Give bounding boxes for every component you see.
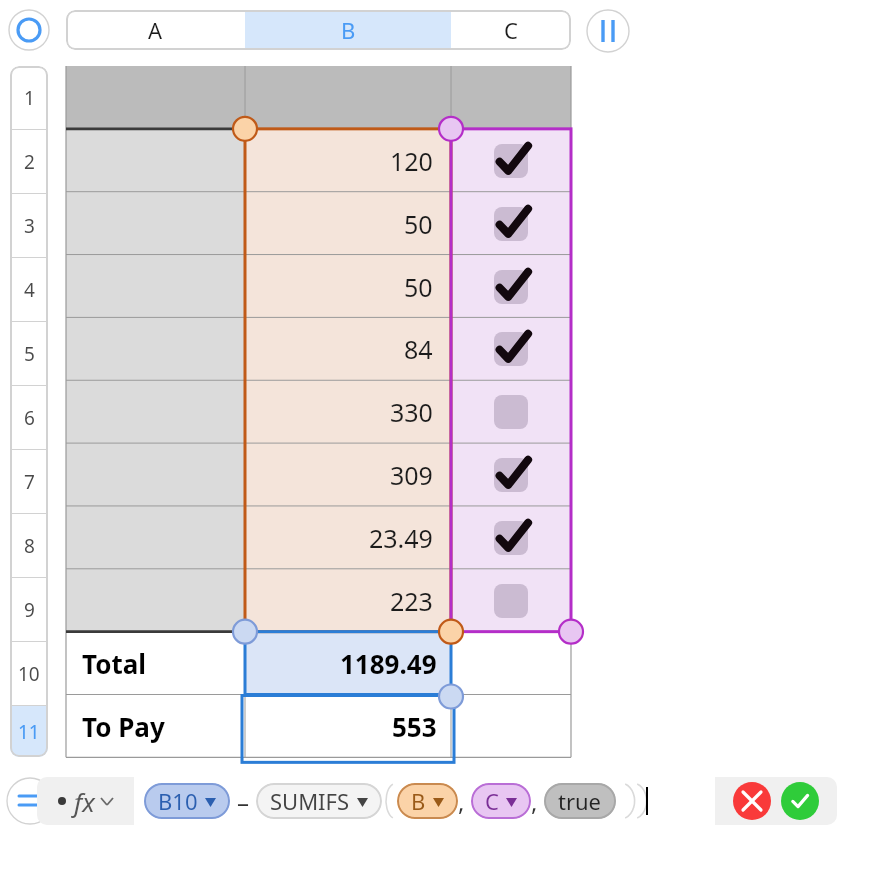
- staticText: 3: [24, 213, 35, 239]
- button[interactable]: C: [485, 783, 517, 819]
- button[interactable]: C: [451, 10, 571, 50]
- staticText: ,: [458, 785, 465, 818]
- staticText: To Pay: [82, 709, 165, 744]
- button[interactable]: 223: [245, 569, 451, 632]
- staticText: 23.49: [369, 521, 433, 555]
- staticText: A: [148, 15, 163, 45]
- staticText: B10: [158, 786, 198, 816]
- button[interactable]: 84: [245, 317, 451, 380]
- button[interactable]: 6: [10, 386, 48, 449]
- staticText: C: [504, 15, 518, 45]
- button[interactable]: Select all: [8, 9, 50, 51]
- button[interactable]: 4: [10, 258, 48, 321]
- button[interactable]: 5: [10, 322, 48, 385]
- button[interactable]: To Pay: [66, 695, 245, 758]
- button[interactable]: 3: [10, 194, 48, 257]
- staticText: fx: [74, 784, 95, 819]
- button[interactable]: Checked: [451, 443, 571, 506]
- staticText: 5: [24, 341, 35, 367]
- button[interactable]: 330: [245, 380, 451, 443]
- staticText: 1: [24, 85, 35, 111]
- button[interactable]: Unchecked: [451, 569, 571, 632]
- button[interactable]: Cancel: [733, 782, 771, 820]
- staticText: 330: [390, 395, 433, 429]
- staticText: 50: [404, 207, 433, 241]
- staticText: 50: [404, 270, 433, 304]
- button[interactable]: 553: [245, 695, 451, 758]
- staticText: 9: [24, 597, 35, 623]
- button[interactable]: Checked: [451, 255, 571, 318]
- button[interactable]: B: [245, 10, 451, 50]
- staticText: 4: [24, 277, 35, 303]
- button[interactable]: 8: [10, 514, 48, 577]
- staticText: C: [485, 786, 499, 816]
- staticText: 1189.49: [340, 646, 437, 681]
- button[interactable]: 1: [10, 66, 48, 129]
- button[interactable]: true: [558, 783, 602, 819]
- staticText: 7: [24, 469, 35, 495]
- button[interactable]: Checked: [451, 506, 571, 569]
- button[interactable]: SUMIFS: [270, 783, 368, 819]
- button[interactable]: 7: [10, 450, 48, 513]
- staticText: 309: [390, 458, 433, 492]
- button[interactable]: Total: [66, 632, 245, 695]
- button[interactable]: 10: [10, 642, 48, 705]
- button[interactable]: Checked: [451, 129, 571, 192]
- button[interactable]: 50: [245, 255, 451, 318]
- staticText: 6: [24, 405, 35, 431]
- button[interactable]: Unchecked: [451, 380, 571, 443]
- button[interactable]: fx: [37, 777, 134, 825]
- staticText: 553: [392, 709, 437, 744]
- staticText: 2: [24, 149, 35, 175]
- staticText: B: [341, 15, 356, 45]
- staticText: 223: [390, 584, 433, 618]
- button[interactable]: A: [66, 10, 245, 50]
- button[interactable]: Pause: [586, 9, 630, 53]
- staticText: 8: [24, 533, 35, 559]
- button[interactable]: 2: [10, 130, 48, 193]
- button[interactable]: 9: [10, 578, 48, 641]
- button[interactable]: 309: [245, 443, 451, 506]
- button[interactable]: B10: [158, 783, 216, 819]
- staticText: SUMIFS: [270, 786, 350, 816]
- button[interactable]: Confirm: [781, 782, 819, 820]
- staticText: 10: [18, 661, 40, 687]
- staticText: ,: [531, 785, 538, 818]
- staticText: Total: [82, 646, 147, 681]
- staticText: true: [558, 786, 602, 816]
- button[interactable]: B: [411, 783, 444, 819]
- button[interactable]: Checked: [451, 317, 571, 380]
- button[interactable]: 11: [10, 706, 48, 757]
- staticText: 11: [18, 719, 40, 745]
- staticText: 84: [404, 332, 433, 366]
- button[interactable]: Checked: [451, 192, 571, 255]
- staticText: B: [411, 786, 426, 816]
- button[interactable]: 1189.49: [245, 632, 451, 695]
- staticText: –: [237, 785, 249, 818]
- staticText: 120: [390, 144, 433, 178]
- button[interactable]: B10: [144, 777, 705, 825]
- button[interactable]: 50: [245, 192, 451, 255]
- button[interactable]: Menu: [6, 777, 54, 825]
- button[interactable]: 120: [245, 129, 451, 192]
- button[interactable]: 23.49: [245, 506, 451, 569]
